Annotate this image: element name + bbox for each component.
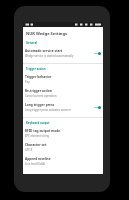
staticText: General [26,41,37,45]
staticText: Long trigger press [25,103,55,107]
button[interactable]: Re-trigger action [23,86,103,100]
staticText: EPC element string [25,134,49,138]
button[interactable]: Character set [23,140,103,154]
staticText: Wedge service is started automatically [25,54,74,58]
staticText: Re-trigger action [25,89,52,93]
button[interactable]: Trigger behavior [23,72,103,86]
button[interactable]: RFID tag output mode [23,126,103,140]
staticText: Automatic service start [25,49,63,53]
button[interactable]: Append newline [23,154,103,168]
staticText: Trigger action [26,67,46,71]
staticText: Character set [25,143,47,147]
staticText: UTF-8 [25,148,33,152]
staticText: RFID tag output mode [25,129,61,133]
staticText: Long trigger press activates scanner [25,108,71,112]
button[interactable]: Long trigger press [23,100,103,114]
staticText: Cancel current operation [25,94,57,98]
staticText: NUR Wedge Settings [26,31,67,36]
staticText: Append newline [25,157,51,161]
staticText: Key [25,80,30,84]
button[interactable]: Automatic service start [23,46,103,60]
staticText: Trigger behavior [25,75,52,79]
staticText: Line feed (0x0A) [25,162,46,166]
staticText: Keyboard output [26,121,50,125]
